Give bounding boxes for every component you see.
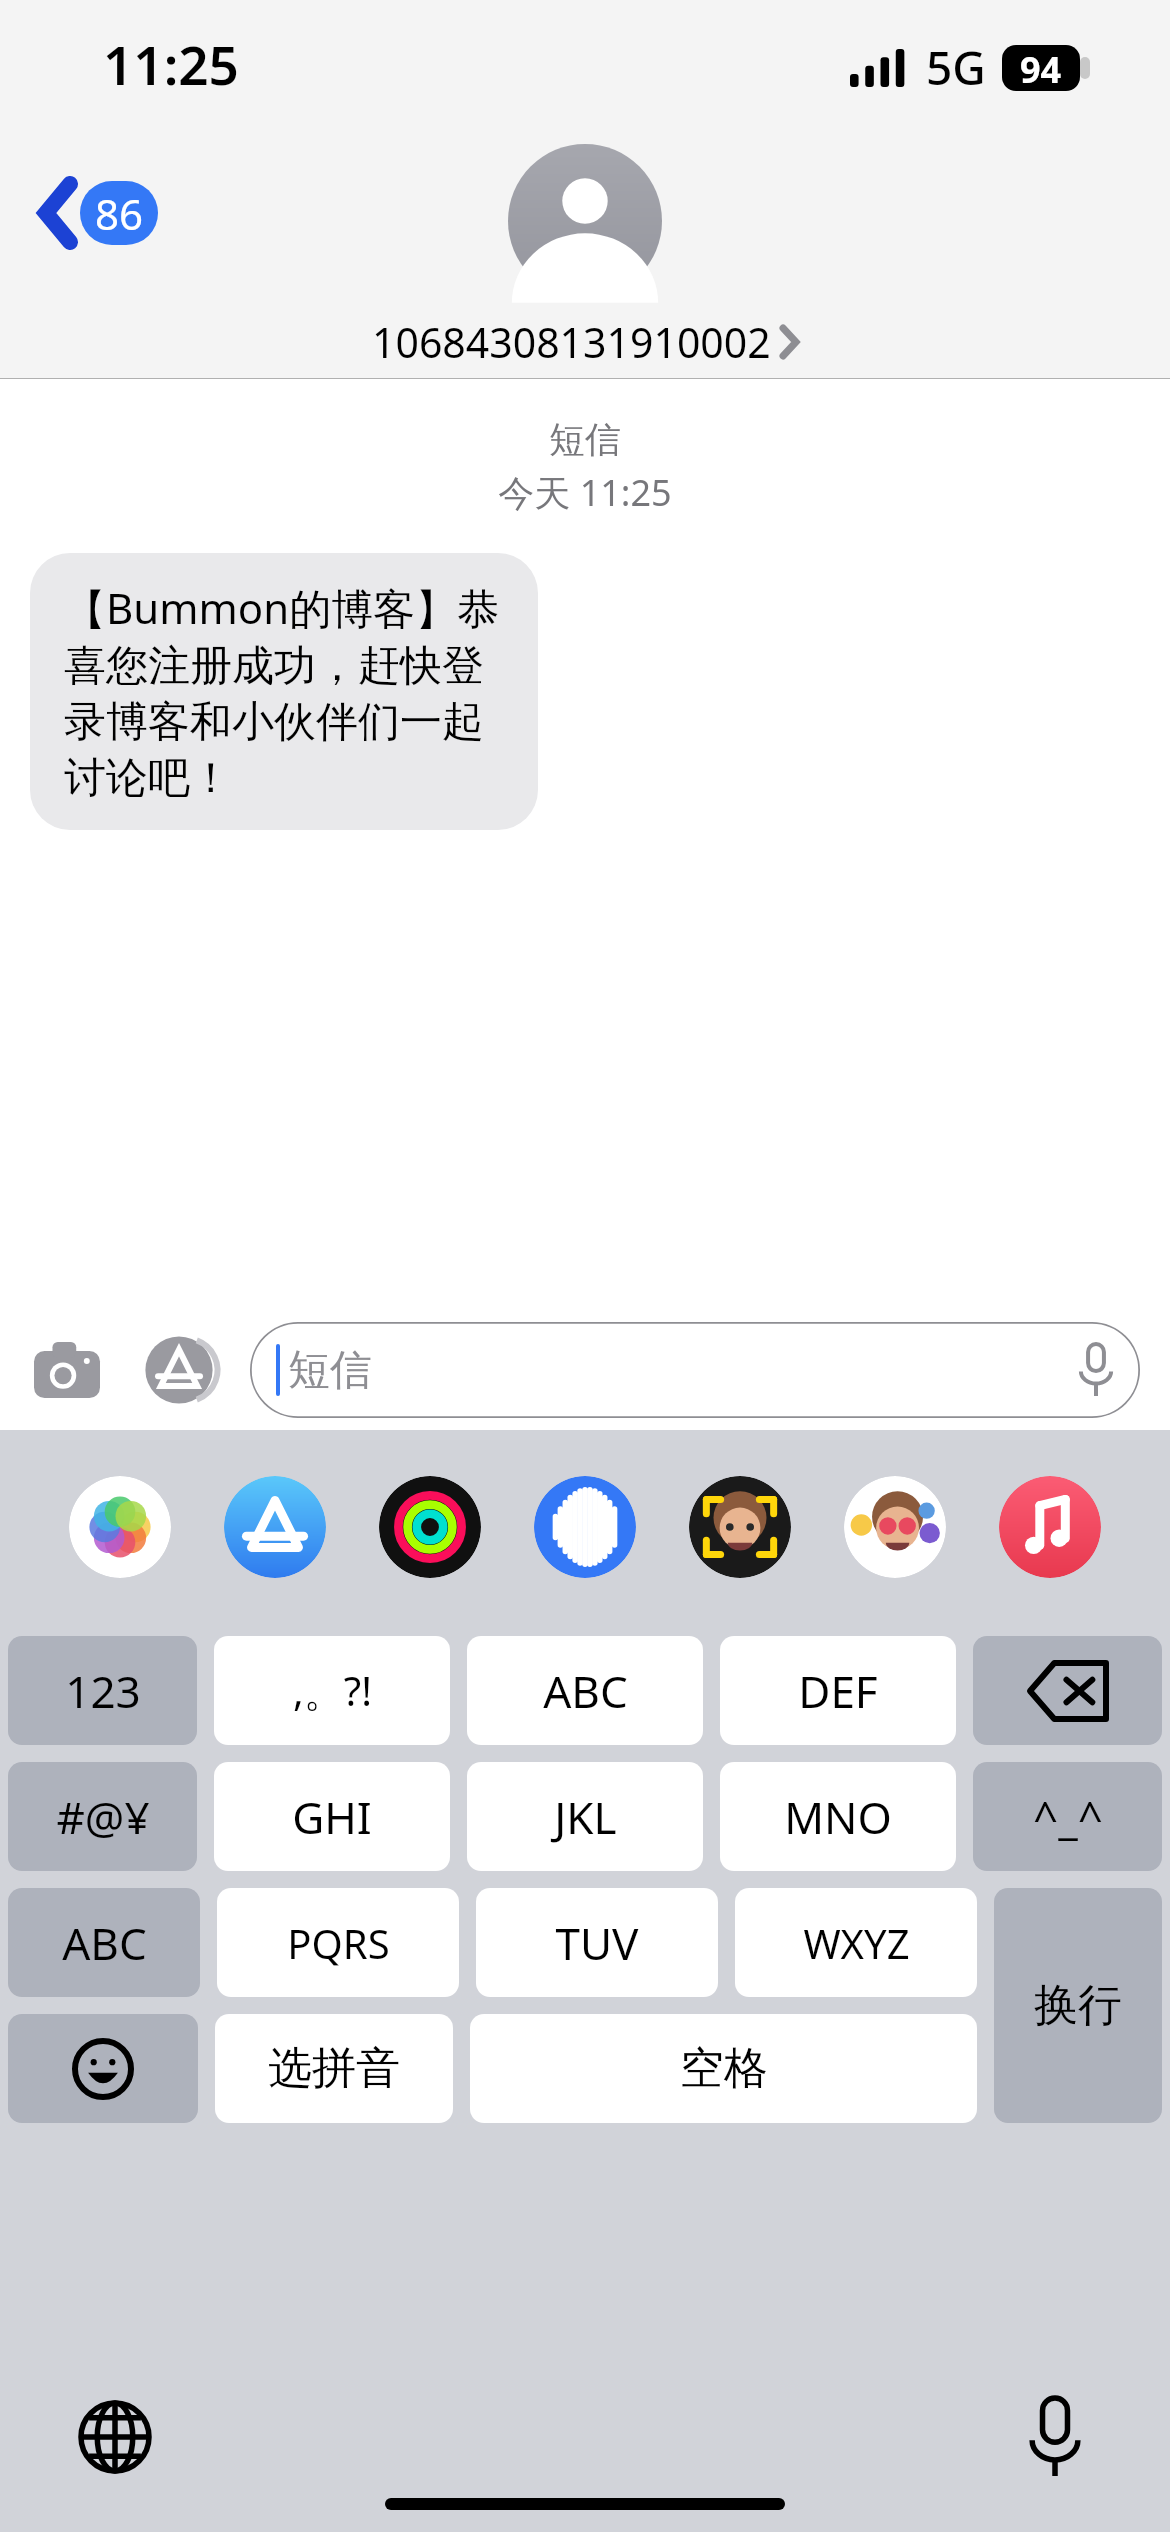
button[interactable]: ,。?! [214,1636,450,1745]
staticText: 94 [1020,45,1062,91]
button[interactable]: GHI [214,1762,450,1871]
staticText: 5G [926,36,986,99]
button[interactable]: 选拼音 [215,2014,453,2123]
staticText: 短信 [0,417,1170,462]
button[interactable]: App Store [142,1333,216,1407]
staticText: DEF [798,1661,878,1721]
button[interactable]: ABC [467,1636,703,1745]
other: Dictate [1078,1344,1114,1396]
staticText: MNO [784,1787,892,1847]
button[interactable]: Change keyboard [70,2392,160,2482]
button[interactable]: WXYZ [735,1888,977,1997]
button[interactable]: audio [534,1476,636,1578]
button[interactable]: memoji2 [844,1476,946,1578]
staticText: JKL [554,1787,617,1847]
button[interactable]: ABC [8,1888,200,1997]
staticText: TUV [555,1913,639,1973]
button[interactable]: photos [69,1476,171,1578]
button[interactable]: music [999,1476,1101,1578]
button[interactable]: 短信 [250,1322,1140,1418]
button[interactable]: TUV [476,1888,718,1997]
staticText: WXYZ [803,1916,910,1970]
staticText: ABC [62,1913,147,1973]
button[interactable]: appstore [224,1476,326,1578]
button[interactable]: MNO [720,1762,956,1871]
staticText: 【Bummon的博客】恭喜您注册成功，赶快登录博客和小伙伴们一起讨论吧！ [64,579,504,804]
button[interactable]: memoji1 [689,1476,791,1578]
staticText: 123 [65,1661,141,1721]
button[interactable]: DEF [720,1636,956,1745]
button[interactable]: backspace [973,1636,1162,1745]
staticText: PQRS [287,1916,390,1970]
button[interactable]: ^_^ [973,1762,1162,1871]
staticText: #@¥ [56,1787,150,1847]
staticText: ^_^ [1033,1787,1103,1847]
button[interactable]: 换行 [994,1888,1162,2123]
staticText: ABC [543,1661,628,1721]
button[interactable]: Camera [30,1333,104,1407]
staticText: 选拼音 [268,2041,400,2096]
staticText: 换行 [1034,1978,1122,2033]
button[interactable]: fitness [379,1476,481,1578]
button[interactable]: emoji [8,2014,198,2123]
button[interactable]: Dictation [1010,2392,1100,2482]
staticText: 短信 [288,1344,372,1397]
button[interactable]: 空格 [470,2014,977,2123]
button[interactable]: #@¥ [8,1762,197,1871]
staticText: 11:25 [103,28,239,100]
staticText: GHI [292,1787,372,1847]
button[interactable]: Back, 86 unread messages [34,176,164,250]
button[interactable]: 【Bummon的博客】恭喜您注册成功，赶快登录博客和小伙伴们一起讨论吧！ [30,553,538,830]
button[interactable]: PQRS [217,1888,459,1997]
staticText: 10684308131910002 [372,314,771,370]
staticText: 今天 11:25 [0,468,1170,517]
button[interactable]: JKL [467,1762,703,1871]
button[interactable]: 123 [8,1636,197,1745]
staticText: 86 [95,185,144,242]
button[interactable]: Contact info [372,144,798,370]
staticText: ,。?! [293,1663,372,1718]
staticText: 空格 [680,2041,768,2096]
